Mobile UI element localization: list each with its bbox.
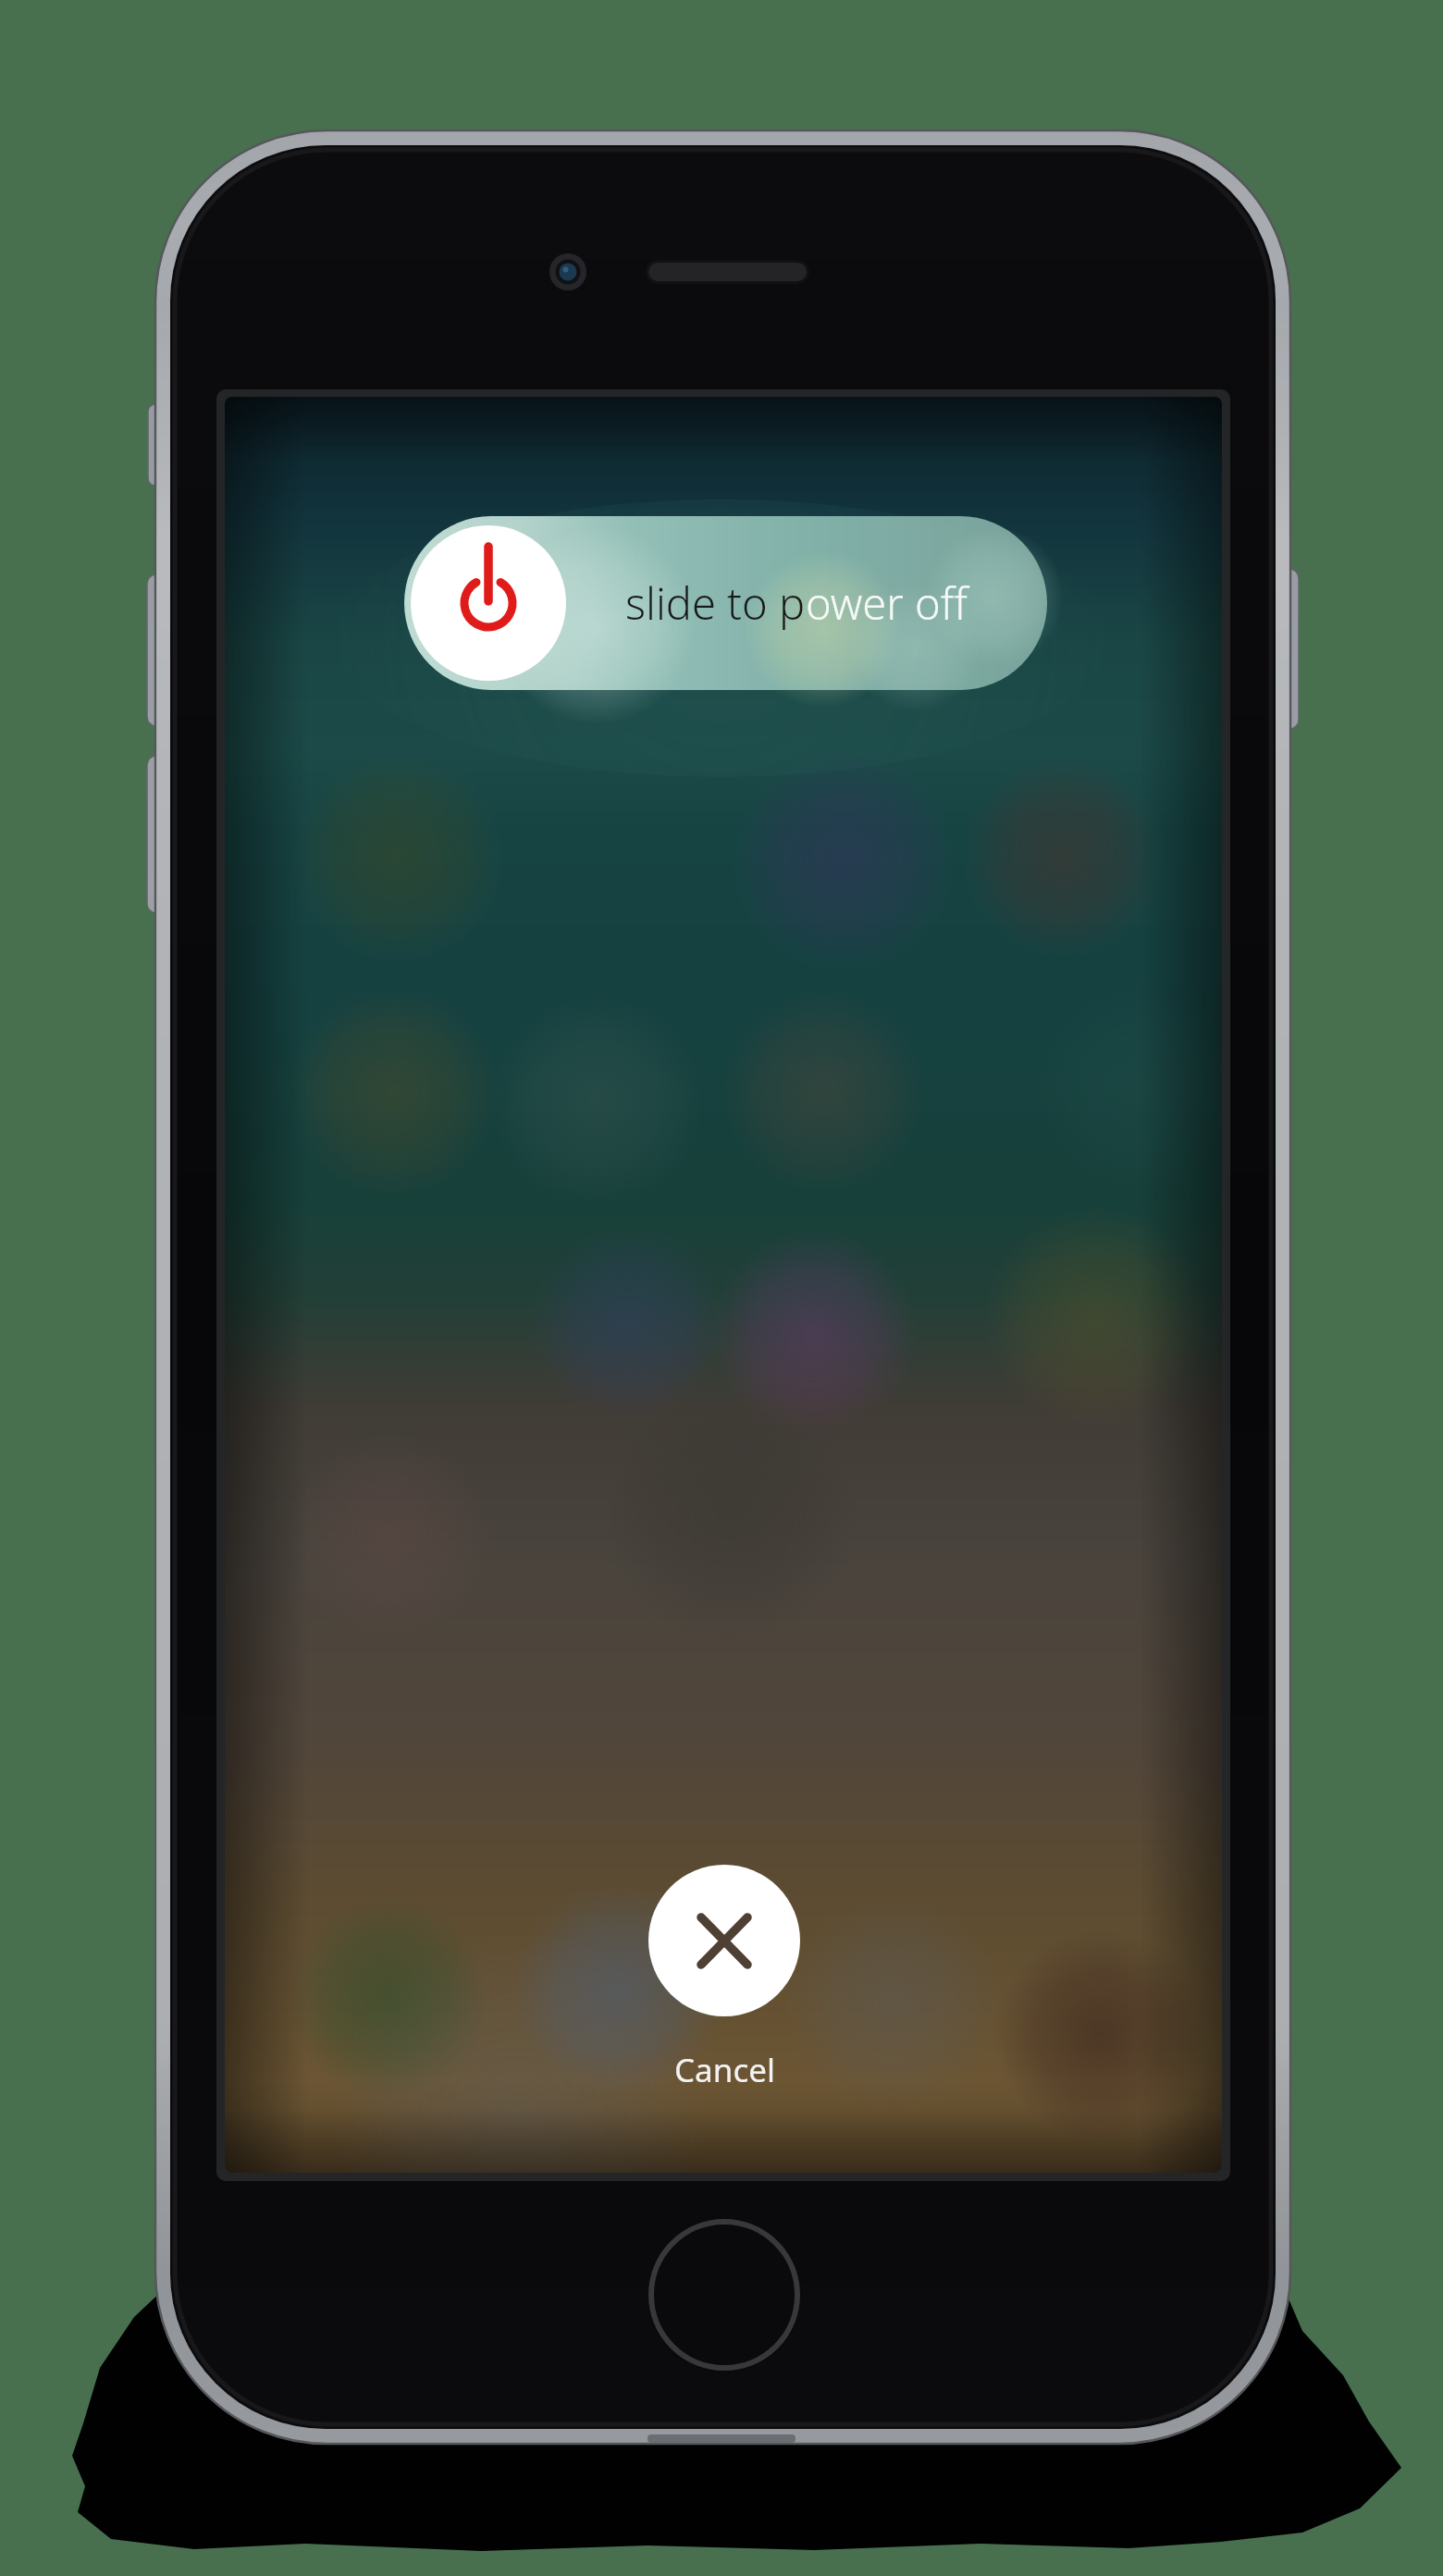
staticText: slide to p bbox=[625, 573, 806, 633]
staticText: Cancel bbox=[674, 2048, 775, 2092]
button[interactable] bbox=[647, 2217, 802, 2373]
button[interactable] bbox=[648, 1865, 800, 2016]
staticText: ower off bbox=[806, 573, 968, 633]
button[interactable] bbox=[404, 516, 1047, 690]
